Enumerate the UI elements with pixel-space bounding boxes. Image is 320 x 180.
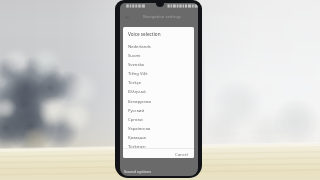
staticText: Sound options [124,169,152,174]
staticText: Navigation settings [143,14,182,20]
button[interactable]: Tiếng Việt [123,69,194,78]
staticText: Русский [128,108,145,114]
button[interactable]: Қазақша [123,133,194,142]
button[interactable]: Русский [123,106,194,115]
button[interactable]: Cancel [172,150,192,158]
staticText: Türkmen [128,144,146,150]
button[interactable]: Türkmen [123,142,194,151]
staticText: Cancel [175,152,189,158]
staticText: Ελληνικά [128,89,146,95]
button[interactable]: Ελληνικά [123,87,194,96]
staticText: Беларуская [128,99,152,105]
staticText: Svenska [128,62,144,68]
staticText: Nederlands [128,44,151,50]
staticText: Українська [128,126,151,132]
staticText: Қазақша [128,135,146,141]
button[interactable]: Беларуская [123,97,194,106]
staticText: Voice selection [128,31,161,37]
button[interactable]: Suomi [123,51,194,60]
button[interactable]: Nederlands [123,42,194,51]
staticText: Српски [128,117,143,123]
staticText: Suomi [128,53,141,59]
button[interactable]: Türkçe [123,78,194,87]
staticText: Tiếng Việt [128,71,148,77]
button[interactable]: Svenska [123,60,194,69]
staticText: Türkçe [128,80,142,86]
button[interactable]: Српски [123,115,194,124]
button[interactable]: Українська [123,124,194,133]
